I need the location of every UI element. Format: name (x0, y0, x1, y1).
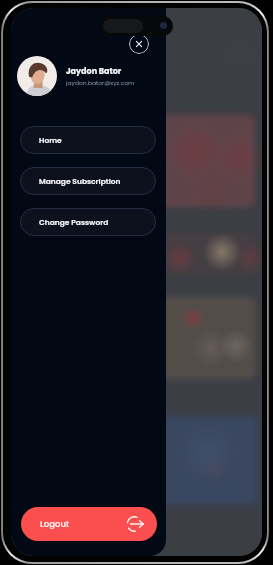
button[interactable]: Home (20, 126, 156, 154)
staticText: Home (39, 135, 62, 145)
button[interactable]: Logout (21, 507, 157, 541)
staticText: Logout (40, 518, 70, 530)
button[interactable]: Manage Subscription (20, 167, 156, 195)
button[interactable]: Jaydon Bator (17, 56, 160, 96)
staticText: jaydon.bator@xyz.com (66, 79, 135, 87)
button[interactable]: Close drawer (129, 34, 149, 54)
staticText: Change Password (39, 217, 109, 227)
staticText: Jaydon Bator (66, 66, 122, 77)
button[interactable]: Change Password (20, 208, 156, 236)
staticText: Manage Subscription (39, 176, 121, 186)
